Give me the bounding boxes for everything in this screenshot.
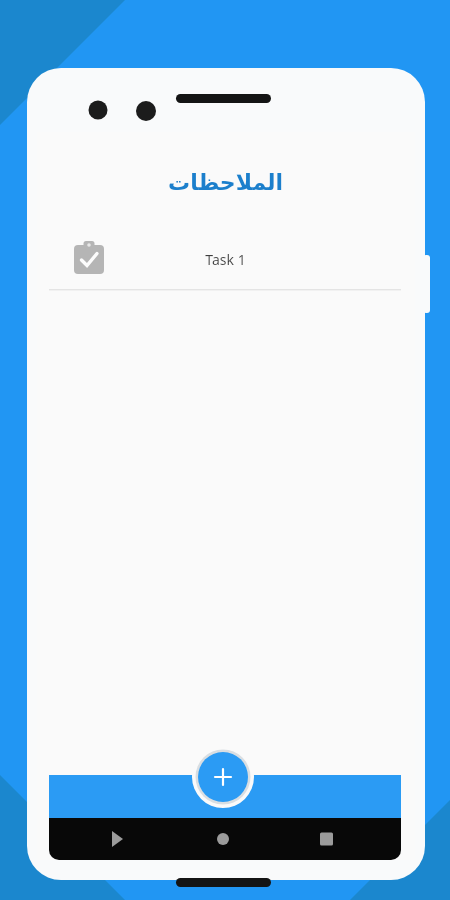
button[interactable]: Back (96, 820, 140, 860)
staticText: الملاحظات (168, 170, 283, 196)
button[interactable]: Task 1 (49, 230, 401, 288)
button[interactable]: Add note (197, 751, 249, 803)
button[interactable]: Home (201, 820, 245, 860)
button[interactable]: الملاحظات (125, 164, 325, 202)
button[interactable]: Recents (305, 820, 349, 860)
staticText: Task 1 (205, 250, 246, 269)
